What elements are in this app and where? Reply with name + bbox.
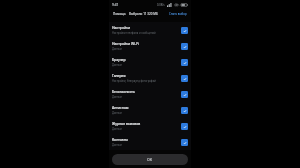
- button[interactable]: Выбрано: [181, 59, 188, 66]
- staticText: Браузер: [112, 57, 126, 62]
- staticText: Данные: [112, 63, 122, 67]
- button[interactable]: Выбрано: [181, 27, 188, 34]
- staticText: Снять выбор: [169, 12, 187, 16]
- staticText: 9:41: [112, 3, 119, 7]
- staticText: Выбрано 11 320 МБ: [129, 12, 158, 16]
- staticText: ОК: [147, 157, 153, 162]
- staticText: Антиспам: [112, 105, 129, 110]
- staticText: Настройки: [112, 25, 131, 30]
- button[interactable]: Выбрано: [181, 91, 188, 98]
- staticText: Данные: [112, 95, 122, 99]
- button[interactable]: Браузер: [109, 54, 191, 70]
- staticText: Данные: [112, 47, 122, 51]
- button[interactable]: Выбрано: [181, 139, 188, 146]
- staticText: Журнал вызовов: [112, 121, 141, 126]
- button[interactable]: Выбрано: [181, 75, 188, 82]
- staticText: 0.0K/s: [157, 3, 165, 7]
- button[interactable]: Снять выбор: [168, 11, 188, 17]
- staticText: Данные: [112, 111, 122, 115]
- button[interactable]: Настройки: [109, 22, 191, 38]
- button[interactable]: Безопасность: [109, 86, 191, 102]
- staticText: Галерея: [112, 73, 126, 78]
- button[interactable]: Настройки Wi-Fi: [109, 38, 191, 54]
- staticText: Настройки, бэкграунд фотографий: [112, 79, 156, 83]
- button[interactable]: Контакты: [109, 134, 191, 150]
- staticText: Данные: [112, 143, 122, 147]
- staticText: Настройки телефона и сообщений: [112, 31, 156, 35]
- staticText: Безопасность: [112, 89, 135, 94]
- staticText: Контакты: [112, 137, 128, 142]
- button[interactable]: Выбрано: [181, 43, 188, 50]
- button[interactable]: Антиспам: [109, 102, 191, 118]
- staticText: Данные: [112, 127, 122, 131]
- button[interactable]: Помощь: [112, 11, 127, 17]
- button[interactable]: ОК: [112, 154, 188, 165]
- staticText: Помощь: [113, 12, 126, 16]
- staticText: Настройки Wi-Fi: [112, 41, 139, 46]
- button[interactable]: Галерея: [109, 70, 191, 86]
- button[interactable]: Выбрано: [181, 123, 188, 130]
- button[interactable]: Журнал вызовов: [109, 118, 191, 134]
- button[interactable]: Выбрано: [181, 107, 188, 114]
